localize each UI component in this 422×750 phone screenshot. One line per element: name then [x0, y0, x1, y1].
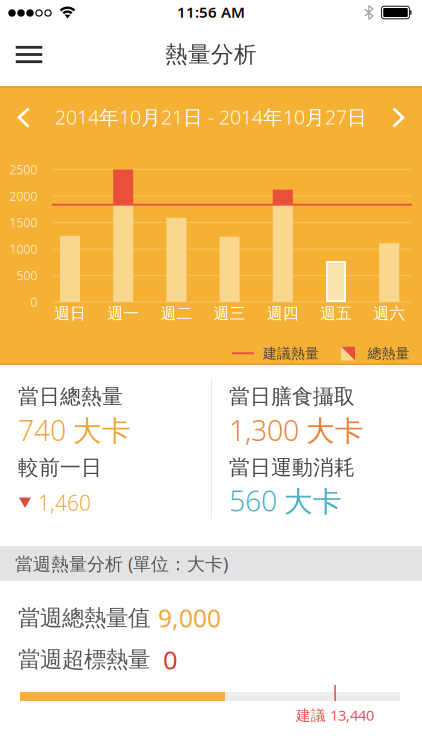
staticText: 當日總熱量: [18, 383, 123, 410]
button[interactable]: 週二: [150, 163, 203, 323]
staticText: 560 大卡: [229, 481, 342, 520]
staticText: 週五: [320, 303, 352, 323]
staticText: 1,460: [38, 488, 91, 517]
staticText: 0: [30, 294, 37, 310]
staticText: 當週超標熱量: [18, 645, 150, 674]
staticText: 當週總熱量值: [18, 604, 150, 632]
staticText: 建議熱量: [263, 345, 319, 362]
staticText: 2014年10月21日 - 2014年10月27日: [55, 104, 367, 130]
staticText: 9,000: [158, 601, 221, 635]
staticText: 0: [163, 642, 178, 677]
staticText: 總熱量: [367, 345, 409, 362]
staticText: 較前一日: [18, 454, 102, 481]
button[interactable]: 週五: [309, 163, 363, 323]
staticText: 週三: [214, 303, 246, 323]
staticText: 740 大卡: [18, 411, 131, 449]
staticText: 1,300 大卡: [229, 411, 364, 449]
staticText: 1500: [9, 214, 37, 231]
staticText: 1000: [9, 241, 37, 257]
button[interactable]: 週三: [203, 163, 256, 323]
staticText: 當日運動消耗: [229, 454, 355, 481]
staticText: 當週熱量分析 (單位：大卡): [15, 551, 228, 576]
button[interactable]: 週一: [97, 163, 150, 323]
staticText: 週一: [107, 303, 139, 323]
staticText: 週六: [373, 303, 405, 323]
button[interactable]: 週日: [43, 163, 97, 323]
staticText: 週日: [54, 303, 86, 323]
staticText: 500: [16, 267, 37, 284]
staticText: 11:56 AM: [177, 2, 245, 22]
staticText: 週四: [267, 303, 299, 323]
button[interactable]: Next week: [386, 104, 410, 130]
button[interactable]: Previous week: [12, 104, 36, 130]
staticText: 熱量分析: [165, 40, 257, 69]
staticText: 2500: [9, 161, 37, 178]
staticText: 週二: [160, 303, 192, 323]
staticText: 2000: [9, 188, 37, 204]
staticText: 建議 13,440: [296, 705, 374, 725]
staticText: 當日膳食攝取: [229, 383, 355, 410]
button[interactable]: 週四: [256, 163, 309, 323]
button[interactable]: Menu: [11, 42, 47, 66]
button[interactable]: 週六: [363, 163, 416, 323]
